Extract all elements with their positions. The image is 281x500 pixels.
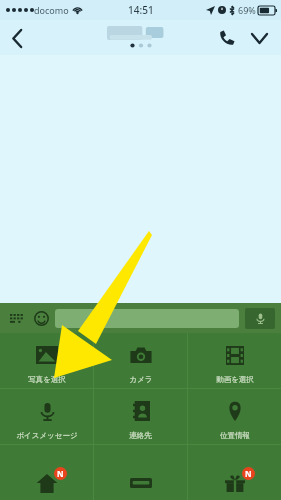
button[interactable]: FILE <box>94 445 187 500</box>
button[interactable]: Call <box>211 22 243 54</box>
button[interactable]: カメラ <box>94 333 187 388</box>
staticText: docomo <box>34 4 69 16</box>
button[interactable]: Keyboard <box>6 308 26 328</box>
button[interactable]: Emoji <box>30 307 52 329</box>
staticText: N <box>245 468 252 479</box>
staticText: ボイスメッセージ <box>16 431 78 440</box>
staticText: カメラ <box>129 375 153 384</box>
staticText: 14:51 <box>128 3 154 17</box>
button[interactable]: HOME <box>0 445 93 500</box>
staticText: 写真を選択 <box>28 375 66 384</box>
button[interactable]: 写真を選択 <box>0 333 93 388</box>
button[interactable]: Voice input <box>245 308 275 329</box>
button[interactable] <box>55 309 239 328</box>
staticText: 位置情報 <box>220 431 250 440</box>
staticText: N <box>57 468 64 479</box>
button[interactable]: More options <box>243 22 275 54</box>
button[interactable]: 連絡先 <box>94 389 187 444</box>
button[interactable]: Back <box>0 21 34 55</box>
button[interactable]: GIFT <box>188 445 281 500</box>
staticText: 69% <box>238 4 256 16</box>
staticText: 動画を選択 <box>216 375 254 384</box>
button[interactable]: 動画を選択 <box>188 333 281 388</box>
button[interactable]: ボイスメッセージ <box>0 389 93 444</box>
button[interactable]: 位置情報 <box>188 389 281 444</box>
staticText: 連絡先 <box>129 431 152 440</box>
